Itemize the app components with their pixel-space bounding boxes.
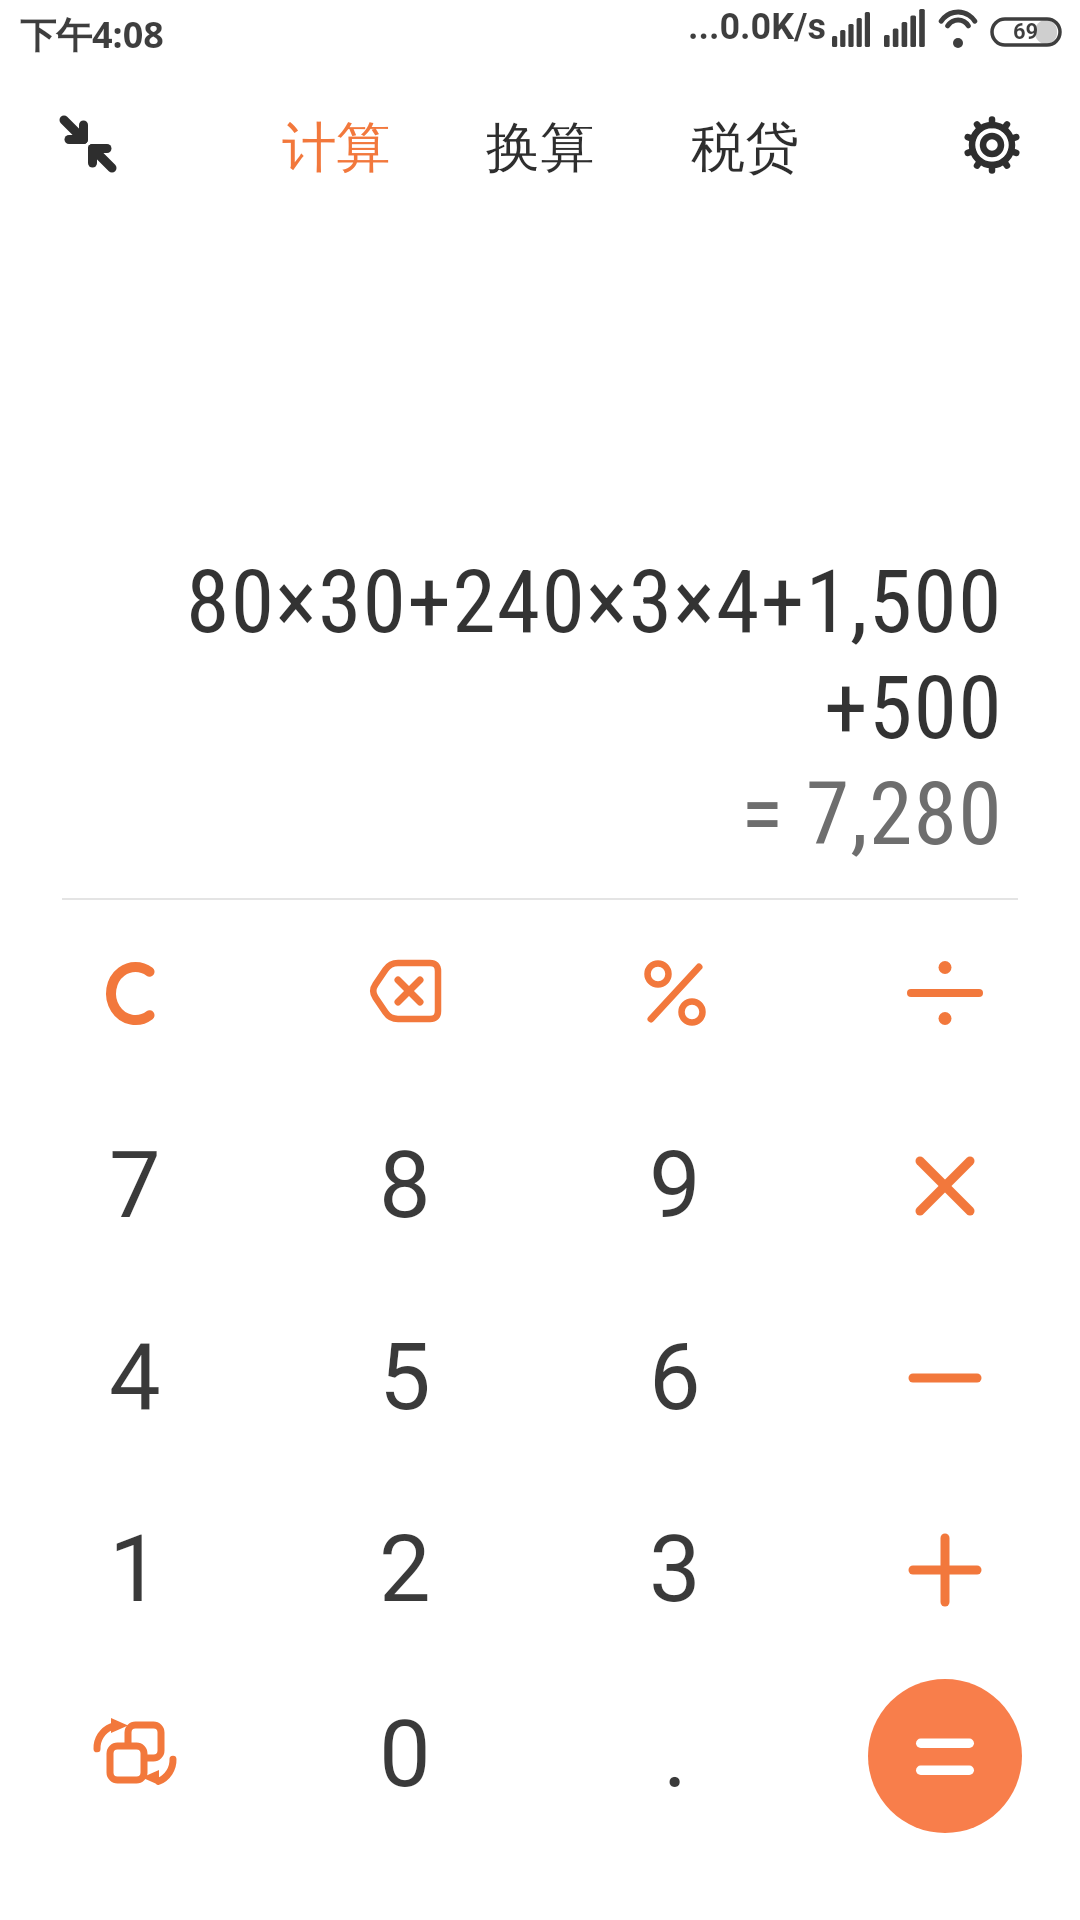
- staticText: 换算: [486, 114, 594, 182]
- button[interactable]: [48, 104, 128, 184]
- staticText: 计算: [282, 114, 390, 182]
- button[interactable]: 计算: [256, 110, 416, 186]
- button[interactable]: [870, 1303, 1020, 1453]
- button[interactable]: 8: [330, 1111, 480, 1261]
- staticText: 1: [109, 1516, 161, 1624]
- button[interactable]: 1: [60, 1495, 210, 1645]
- staticText: 9: [649, 1132, 701, 1240]
- staticText: 下午4:08: [20, 10, 164, 59]
- button[interactable]: [952, 105, 1032, 185]
- button[interactable]: [870, 1111, 1020, 1261]
- button[interactable]: 4: [60, 1303, 210, 1453]
- button[interactable]: 换算: [460, 110, 620, 186]
- button[interactable]: [870, 918, 1020, 1068]
- staticText: 6: [649, 1324, 701, 1432]
- staticText: 8: [379, 1132, 431, 1240]
- staticText: 7: [109, 1132, 161, 1240]
- staticText: +500: [824, 656, 1003, 759]
- staticText: 税贷: [691, 114, 799, 182]
- button[interactable]: [600, 918, 750, 1068]
- button[interactable]: 税贷: [665, 110, 825, 186]
- button[interactable]: 3: [600, 1495, 750, 1645]
- staticText: 3: [649, 1516, 701, 1624]
- staticText: 4: [109, 1324, 161, 1432]
- button[interactable]: 9: [600, 1111, 750, 1261]
- button[interactable]: .: [600, 1680, 750, 1830]
- button[interactable]: 7: [60, 1111, 210, 1261]
- button[interactable]: [60, 1680, 210, 1830]
- button[interactable]: 6: [600, 1303, 750, 1453]
- button[interactable]: [330, 918, 480, 1068]
- staticText: .: [663, 1701, 688, 1809]
- staticText: 0: [379, 1701, 431, 1809]
- button[interactable]: [60, 918, 210, 1068]
- staticText: 5: [379, 1324, 431, 1432]
- staticText: ...0.0K/s: [688, 6, 827, 48]
- button[interactable]: [868, 1679, 1022, 1833]
- button[interactable]: 2: [330, 1495, 480, 1645]
- staticText: 80×30+240×3×4+1,500: [186, 550, 1003, 653]
- staticText: 2: [379, 1516, 431, 1624]
- button[interactable]: [870, 1495, 1020, 1645]
- button[interactable]: 5: [330, 1303, 480, 1453]
- staticText: 69: [1013, 19, 1039, 45]
- staticText: = 7,280: [741, 762, 1003, 865]
- button[interactable]: 0: [330, 1680, 480, 1830]
